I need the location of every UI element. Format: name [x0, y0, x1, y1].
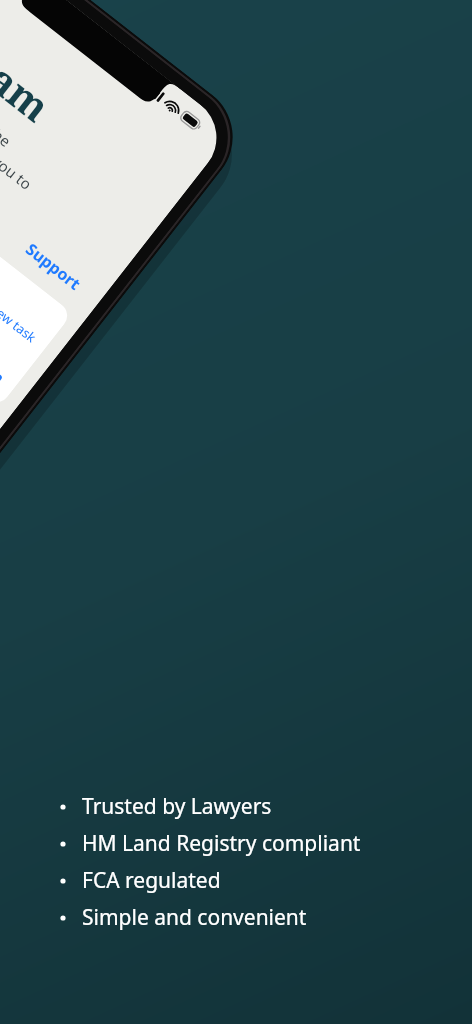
button[interactable]: Support	[21, 238, 85, 295]
staticText: Trusted by Lawyers	[82, 792, 272, 821]
button[interactable]: Trusted by Lawyers	[56, 788, 472, 825]
button[interactable]: Simple and convenient	[56, 899, 472, 936]
staticText: Simple and convenient	[82, 903, 307, 932]
button[interactable]: FCA regulated	[56, 862, 472, 899]
button[interactable]: Begin	[0, 343, 9, 389]
button[interactable]: Personal details	[0, 127, 73, 408]
staticText: Hi Sam	[0, 2, 62, 133]
staticText: HM Land Registry compliant	[82, 829, 361, 858]
staticText: FCA regulated	[82, 866, 221, 895]
staticText: JP Law have set the following tasks for …	[0, 52, 54, 215]
button[interactable]: HM Land Registry compliant	[56, 825, 472, 862]
staticText: New task	[0, 298, 40, 346]
